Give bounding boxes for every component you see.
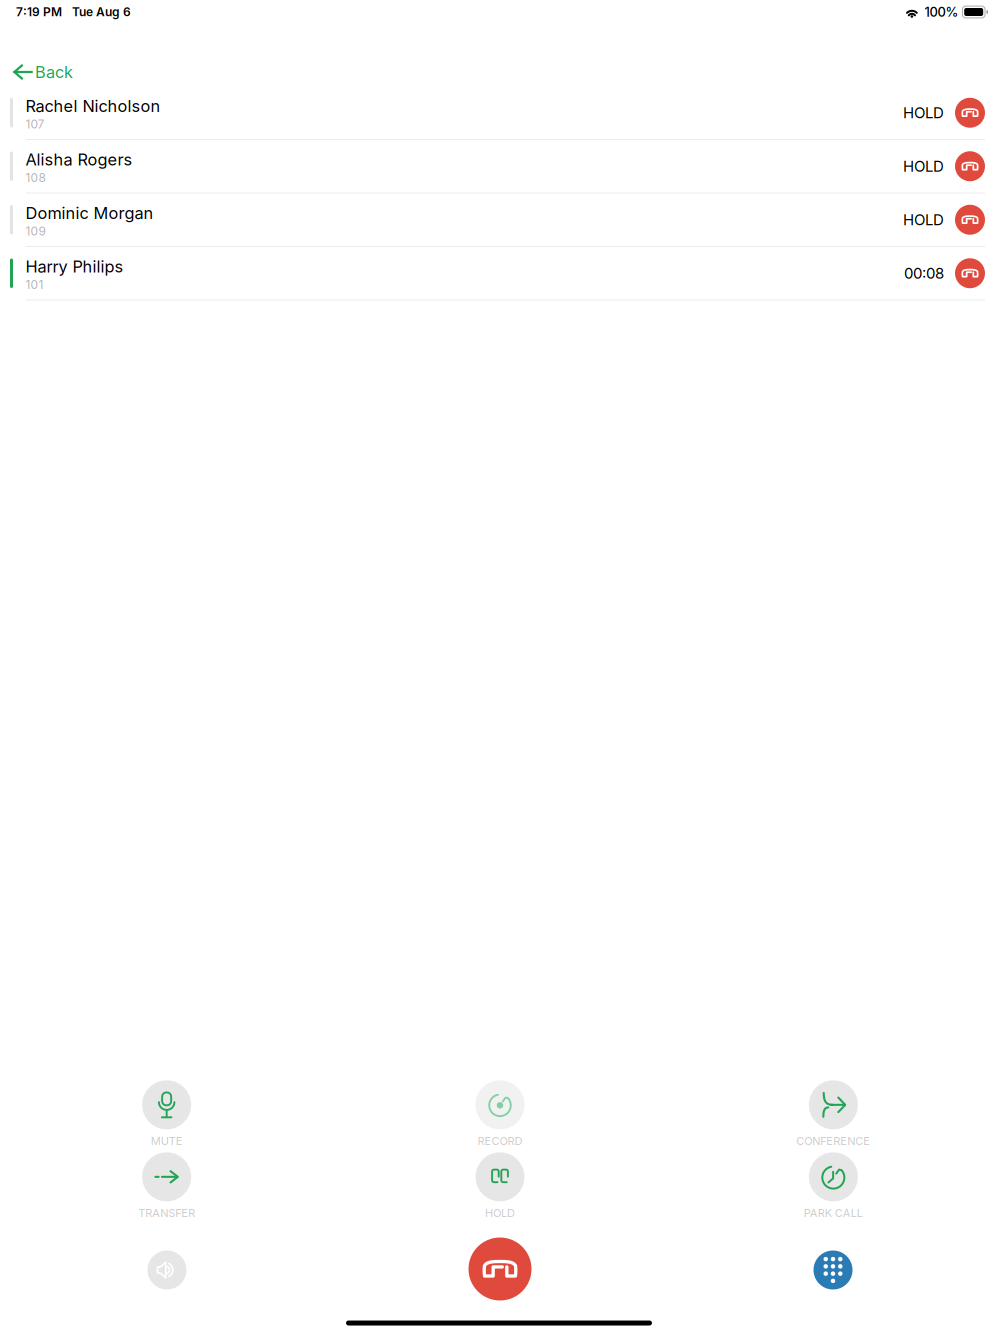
staticText: 107 [26,117,45,131]
button[interactable]: Speaker [147,1250,186,1289]
staticText: HOLD [903,104,944,122]
staticText: 00:08 [904,264,944,282]
button[interactable]: End call [468,1237,531,1300]
staticText: HOLD [485,1206,515,1220]
staticText: Harry Philips [26,257,124,276]
button[interactable]: HOLD [333,1150,667,1222]
staticText: TRANSFER [138,1206,195,1220]
staticText: RECORD [477,1134,522,1148]
staticText: 101 [26,277,44,292]
button[interactable]: MUTE [0,1078,333,1150]
staticText: 7:19 PM [16,5,62,19]
staticText: MUTE [151,1134,183,1148]
staticText: Back [35,62,73,82]
button[interactable]: Keypad [813,1250,852,1289]
staticText: PARK CALL [804,1206,863,1220]
staticText: 108 [26,170,46,185]
staticText: Dominic Morgan [26,203,154,223]
staticText: HOLD [903,211,944,229]
button[interactable]: PARK CALL [667,1150,1000,1222]
staticText: Rachel Nicholson [26,96,161,116]
button[interactable]: Alisha Rogers [0,140,1000,193]
button[interactable]: Dominic Morgan [0,193,1000,247]
button[interactable]: CONFERENCE [667,1078,1000,1150]
button[interactable]: Back [0,54,85,90]
staticText: Alisha Rogers [26,150,133,169]
button[interactable]: Harry Philips [0,247,1000,300]
staticText: 109 [26,224,46,238]
button[interactable]: TRANSFER [0,1150,333,1222]
button[interactable]: Rachel Nicholson [0,86,1000,140]
staticText: CONFERENCE [796,1134,870,1148]
staticText: 100% [924,4,958,20]
staticText: HOLD [903,157,944,175]
staticText: Tue Aug 6 [72,5,131,19]
button[interactable]: RECORD [333,1078,667,1150]
